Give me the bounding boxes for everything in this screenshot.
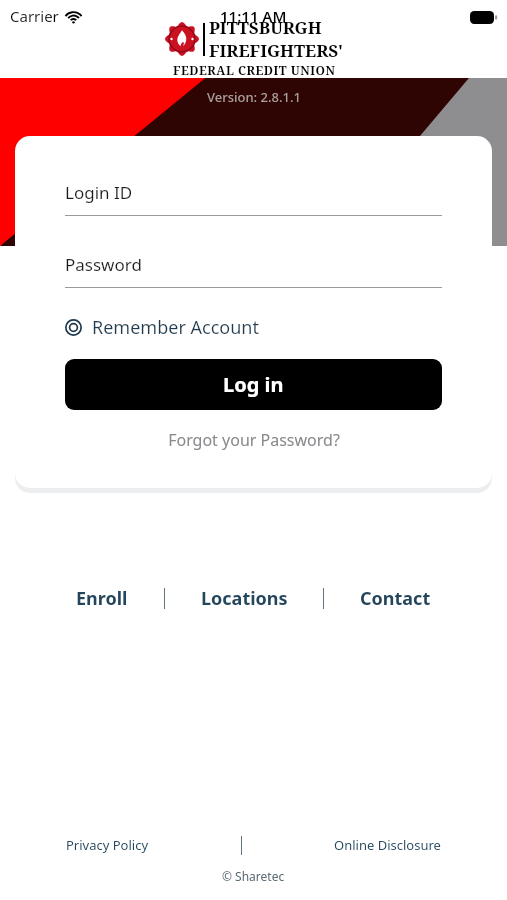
staticText: Locations [201,586,288,611]
staticText: Remember Account [92,315,259,340]
button[interactable]: Log in [65,359,442,410]
button[interactable]: Privacy Policy [62,833,153,857]
button[interactable]: Password [65,253,442,288]
button[interactable]: Login ID [65,181,442,216]
staticText: Contact [360,586,431,611]
staticText: Version: 2.8.1.1 [207,88,301,106]
staticText: Carrier [10,6,59,26]
staticText: PITTSBURGH [209,16,322,39]
other: Remember Account toggle [65,319,82,336]
button[interactable]: Remember Account toggle [65,315,259,340]
staticText: FIREFIGHTERS' [209,39,344,62]
staticText: FEDERAL CREDIT UNION [173,62,336,78]
button[interactable]: Forgot your Password? [158,424,350,456]
staticText: Log in [223,371,284,398]
button[interactable]: Locations [197,580,292,617]
staticText: Online Disclosure [334,836,441,854]
staticText: Privacy Policy [66,836,149,854]
staticText: 11:11 AM [220,6,287,26]
staticText: Enroll [76,586,128,611]
staticText: Login ID [65,181,133,204]
button[interactable]: Online Disclosure [330,833,445,857]
button[interactable]: Enroll [72,580,132,617]
staticText: © Sharetec [222,868,285,884]
button[interactable]: Contact [356,580,435,617]
staticText: Password [65,253,142,276]
